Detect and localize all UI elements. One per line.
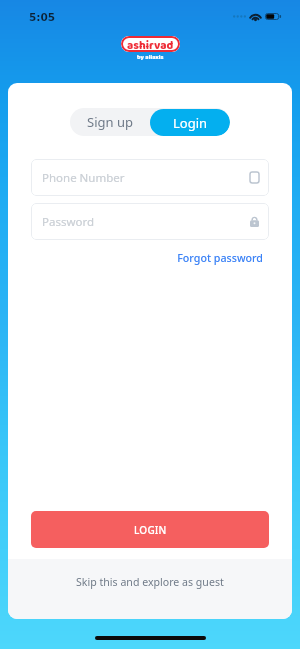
button[interactable]: Password	[31, 203, 269, 240]
staticText: Sign up	[87, 113, 133, 131]
button[interactable]: Forgot password	[163, 251, 263, 266]
staticText: LOGIN	[134, 523, 167, 537]
other: Wi-Fi	[249, 12, 262, 21]
staticText: by aliaxis	[137, 53, 164, 63]
staticText: Forgot password	[177, 251, 263, 266]
button[interactable]: Sign up	[70, 108, 150, 136]
button[interactable]: Phone Number	[31, 159, 269, 196]
staticText: Phone Number	[42, 170, 250, 186]
staticText: 5:05	[29, 11, 56, 23]
button[interactable]: Skip this and explore as guest	[8, 559, 292, 619]
button[interactable]: Login	[150, 109, 230, 136]
staticText: Login	[173, 114, 208, 132]
button[interactable]: LOGIN	[31, 511, 269, 548]
other: Battery	[265, 13, 281, 20]
staticText: Skip this and explore as guest	[76, 575, 224, 589]
staticText: Password	[42, 214, 250, 230]
staticText: ashirvad	[127, 36, 174, 52]
